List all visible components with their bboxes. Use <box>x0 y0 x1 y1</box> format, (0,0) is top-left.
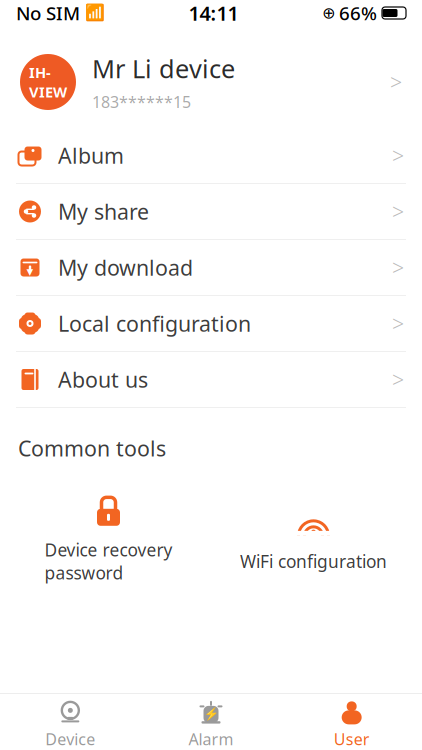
staticText: > <box>392 309 404 338</box>
button[interactable]: IH-VIEW <box>0 36 422 128</box>
button[interactable]: Local configuration <box>0 296 422 351</box>
staticText: 📶 <box>85 4 105 22</box>
staticText: Alarm <box>188 728 233 750</box>
staticText: Device recovery password <box>44 538 172 584</box>
button[interactable]: About us <box>0 352 422 407</box>
staticText: > <box>392 365 404 394</box>
staticText: > <box>390 68 402 96</box>
staticText: > <box>392 197 404 226</box>
staticText: 66% <box>339 1 377 25</box>
staticText: IH-VIEW <box>29 62 67 101</box>
button[interactable]: WiFi configuration <box>211 502 416 577</box>
button[interactable]: My share <box>0 184 422 239</box>
button[interactable]: Device <box>0 694 141 750</box>
button[interactable]: ▾ <box>0 240 422 295</box>
staticText: WiFi configuration <box>240 550 387 573</box>
button[interactable]: ⚡ <box>141 694 281 750</box>
staticText: User <box>334 728 370 750</box>
staticText: Album <box>58 141 124 170</box>
staticText: Device <box>45 728 95 750</box>
staticText: ⚡ <box>203 707 218 721</box>
button[interactable]: Device recovery password <box>6 490 211 588</box>
staticText: Local configuration <box>58 309 251 338</box>
staticText: My download <box>58 253 193 282</box>
staticText: No SIM <box>16 1 80 25</box>
button[interactable]: User <box>281 694 422 750</box>
staticText: My share <box>58 197 149 226</box>
staticText: > <box>392 253 404 282</box>
staticText: Common tools <box>18 434 166 462</box>
staticText: 14:11 <box>188 0 238 26</box>
staticText: ⊕ <box>322 4 335 22</box>
staticText: 183******15 <box>92 91 191 112</box>
staticText: > <box>392 141 404 170</box>
button[interactable]: Album <box>0 128 422 183</box>
staticText: Mr Li device <box>92 52 235 85</box>
staticText: ▾ <box>26 264 33 279</box>
staticText: About us <box>58 365 148 394</box>
